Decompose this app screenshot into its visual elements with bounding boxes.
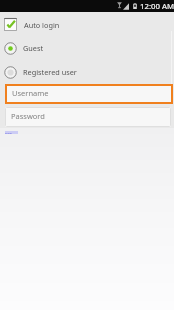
staticText: Password	[11, 111, 45, 121]
staticText: 12:00 AM	[140, 1, 174, 12]
button[interactable]: Username	[5, 84, 173, 104]
staticText: Guest	[23, 43, 44, 53]
button[interactable]: Create a new account	[5, 131, 18, 134]
button[interactable]: Registered user	[0, 65, 174, 79]
button[interactable]: Guest	[0, 41, 174, 55]
staticText: Registered user	[23, 67, 77, 77]
button[interactable]: Password	[5, 107, 171, 127]
staticText: Username	[12, 88, 49, 98]
staticText: Auto login	[24, 20, 60, 30]
button[interactable]: Auto login	[0, 16, 174, 33]
staticText: new account	[5, 131, 18, 134]
